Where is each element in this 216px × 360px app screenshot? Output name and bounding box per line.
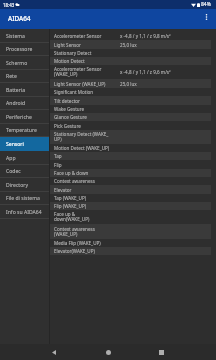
button[interactable]: Codec [0, 165, 50, 178]
button[interactable]: Wake Gesture [50, 105, 211, 113]
staticText: Android [6, 100, 26, 107]
button[interactable]: Sistema [0, 29, 50, 43]
button[interactable]: Accelerometer Sensor [50, 32, 211, 40]
staticText: Batteria [6, 87, 25, 94]
staticText: Elevator [54, 187, 72, 193]
staticText: Wake Gesture [54, 106, 85, 112]
button[interactable]: Batteria [0, 83, 50, 97]
button[interactable]: Motion Detect [50, 57, 211, 65]
staticText: Motion Detect (WAKE_UP) [54, 145, 110, 151]
staticText: Face up & down [54, 170, 89, 176]
button[interactable]: Flip [50, 160, 211, 169]
staticText: Periferiche [6, 114, 32, 121]
staticText: Codec [6, 168, 21, 175]
staticText: File di sistema [6, 195, 40, 202]
staticText: AIDA64 [8, 14, 31, 23]
button[interactable]: Light Sensor [50, 40, 211, 49]
button[interactable]: Tap [50, 152, 211, 160]
button[interactable]: Back [36, 344, 72, 360]
button[interactable]: Motion Detect (WAKE_UP) [50, 144, 211, 152]
staticText: App [6, 155, 16, 162]
button[interactable]: Rete [0, 70, 50, 83]
staticText: Schermo [6, 60, 28, 67]
staticText: Elevator(WAKE_UP) [54, 248, 95, 254]
staticText: x -4,8 / y 1,1 / z 9,8 m/s² [120, 33, 171, 39]
staticText: Flip [54, 162, 62, 168]
staticText: Tap (WAKE_UP) [54, 195, 87, 201]
button[interactable]: File di sistema [0, 192, 50, 205]
button[interactable]: Home [90, 344, 126, 360]
button[interactable]: Face up & down [50, 169, 211, 177]
staticText: Light Sensor [54, 42, 81, 48]
button[interactable]: Recents [143, 344, 179, 360]
staticText: Pick Gesture [54, 123, 81, 129]
staticText: 25,0 lux [120, 81, 137, 87]
button[interactable]: Directory [0, 178, 50, 192]
staticText: Flip (WAKE_UP) [54, 203, 87, 209]
button[interactable]: More options [196, 9, 216, 29]
staticText: Sensori [6, 141, 24, 148]
button[interactable]: Flip (WAKE_UP) [50, 202, 211, 210]
button[interactable]: Elevator(WAKE_UP) [50, 247, 211, 255]
button[interactable]: Pick Gesture [50, 121, 211, 130]
staticText: Info su AIDA64 [6, 209, 42, 216]
staticText: Directory [6, 182, 28, 189]
staticText: Significant Motion [54, 89, 94, 95]
button[interactable]: Context awareness [50, 177, 211, 185]
staticText: Media Flip (WAKE_UP) [54, 240, 101, 246]
staticText: Sistema [6, 33, 25, 40]
staticText: Context awareness (WAKE_UP) [54, 226, 95, 238]
staticText: 18:43 [3, 2, 15, 8]
staticText: Tap [54, 153, 62, 159]
staticText: Face up & down(WAKE_UP) [54, 211, 90, 223]
staticText: Context awareness [54, 178, 95, 184]
staticText: Tilt detector [54, 98, 80, 104]
button[interactable]: Periferiche [0, 110, 50, 124]
staticText: x -4,8 / y 1,1 / z 9,6 m/s² [120, 69, 171, 75]
button[interactable]: Schermo [0, 56, 50, 70]
button[interactable]: Processore [0, 43, 50, 56]
staticText: 25,0 lux [120, 42, 137, 48]
staticText: Motion Detect [54, 58, 85, 64]
button[interactable]: Android [0, 97, 50, 110]
staticText: Accelerometer Sensor [54, 33, 102, 39]
button[interactable]: Tap (WAKE_UP) [50, 194, 211, 202]
button[interactable]: Temperature [0, 124, 50, 137]
button[interactable]: Accelerometer Sensor (WAKE_UP) [50, 65, 211, 79]
button[interactable]: Significant Motion [50, 88, 211, 96]
button[interactable]: Stationary Detect (WAKE_ UP) [50, 130, 211, 144]
button[interactable]: Face up & down(WAKE_UP) [50, 210, 211, 224]
staticText: Processore [6, 46, 33, 53]
button[interactable]: Stationary Detect [50, 49, 211, 57]
staticText: 84% [201, 1, 211, 8]
button[interactable]: Context awareness (WAKE_UP) [50, 224, 211, 239]
button[interactable]: Light Sensor (WAKE_UP) [50, 79, 211, 88]
staticText: Temperature [6, 127, 37, 134]
button[interactable]: Info su AIDA64 [0, 205, 50, 219]
button[interactable]: App [0, 151, 50, 165]
button[interactable]: Tilt detector [50, 96, 211, 105]
button[interactable]: Elevator [50, 185, 211, 194]
staticText: Stationary Detect (WAKE_ UP) [54, 131, 109, 143]
staticText: Glance Gesture [54, 114, 87, 120]
staticText: Light Sensor (WAKE_UP) [54, 81, 106, 87]
button[interactable]: Glance Gesture [50, 113, 211, 121]
staticText: Rete [6, 73, 17, 80]
button[interactable]: Sensori [0, 137, 50, 151]
staticText: Stationary Detect [54, 50, 92, 56]
staticText: Accelerometer Sensor (WAKE_UP) [54, 66, 102, 78]
button[interactable]: Media Flip (WAKE_UP) [50, 239, 211, 247]
